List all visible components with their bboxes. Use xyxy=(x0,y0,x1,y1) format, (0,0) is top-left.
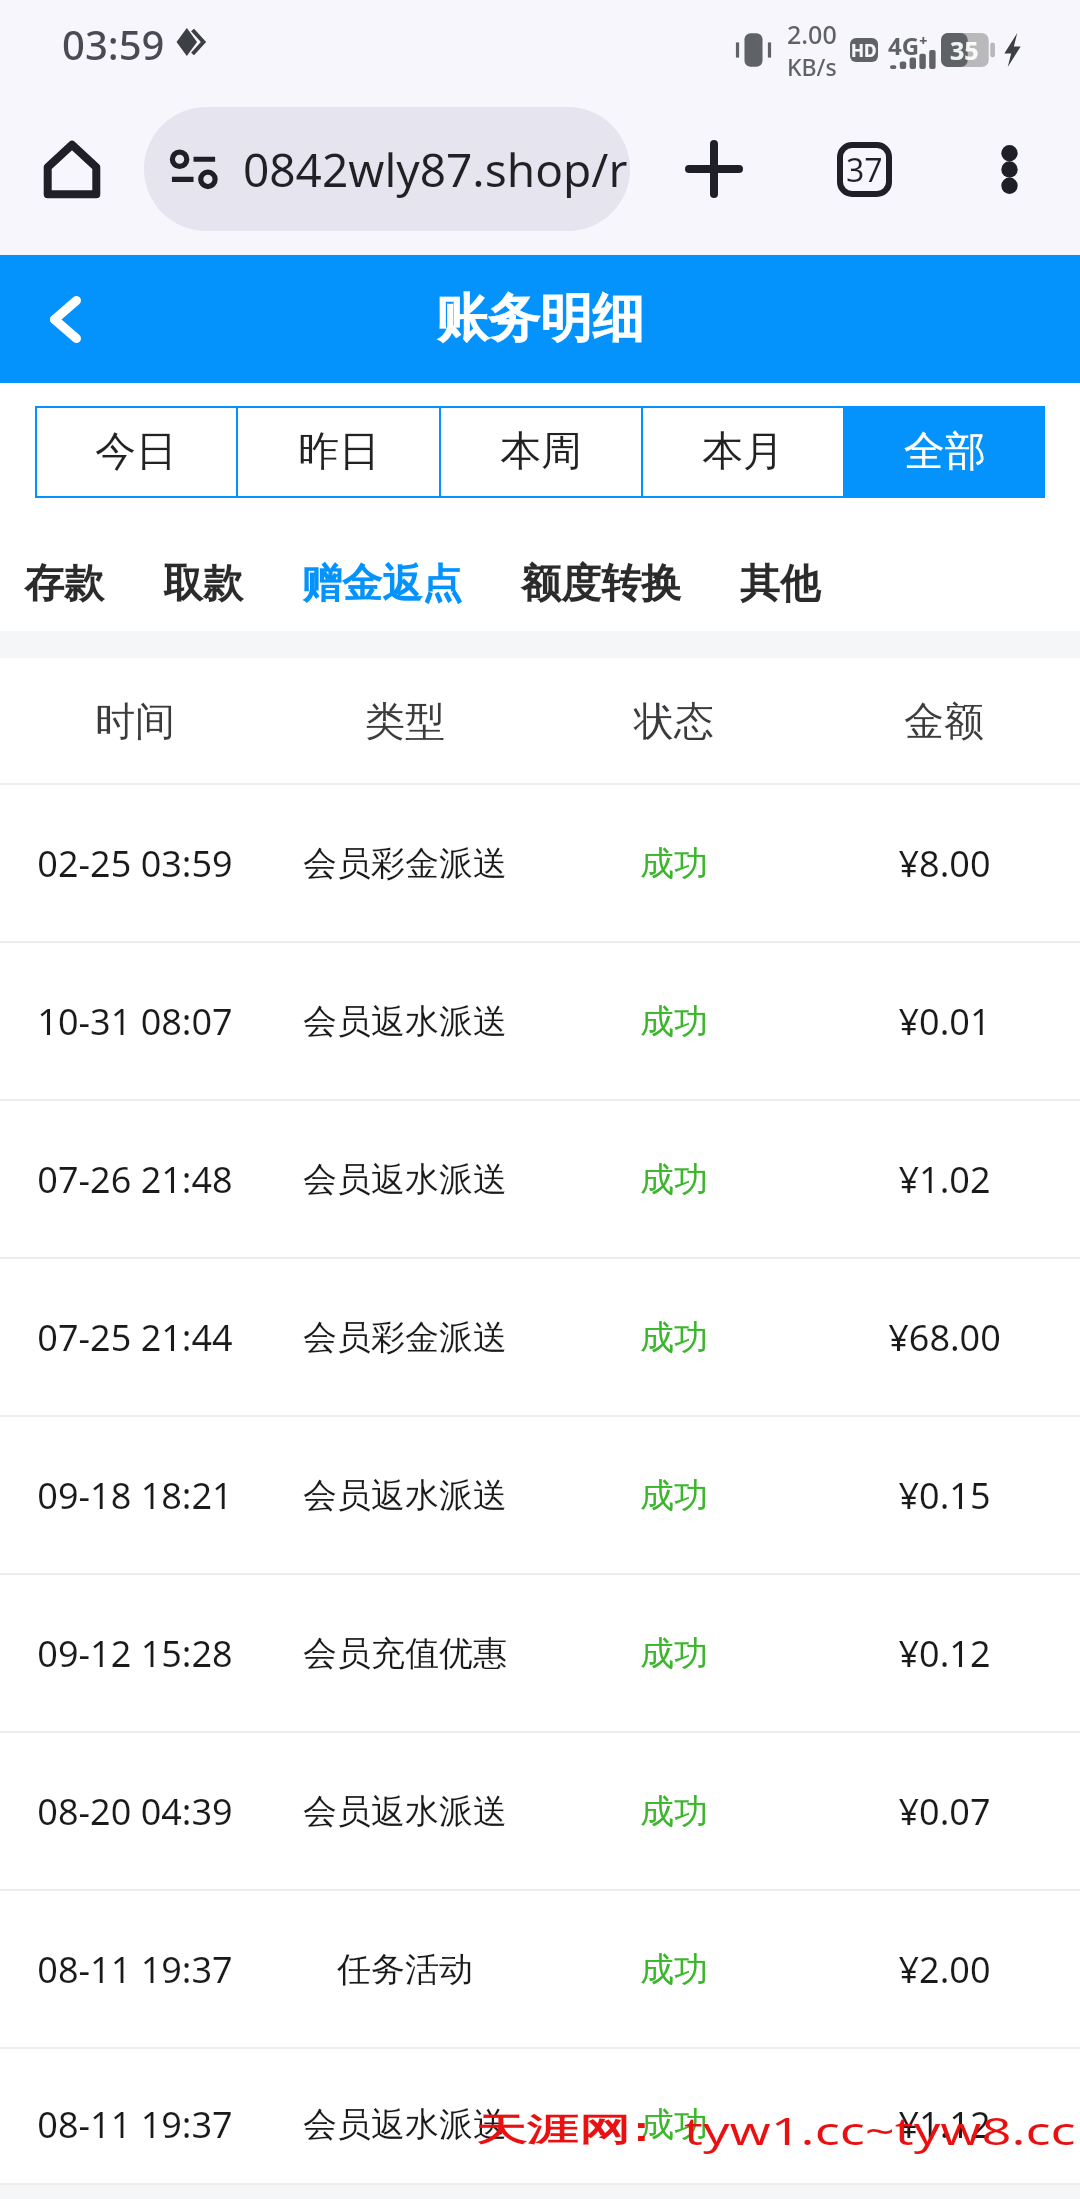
button[interactable]: 08-20 04:39 xyxy=(0,1733,1080,1889)
staticText: 其他 xyxy=(740,558,820,608)
button[interactable]: 今日 xyxy=(35,406,236,498)
button[interactable]: 本周 xyxy=(441,406,641,498)
staticText: 10-31 08:07 xyxy=(37,997,233,1046)
staticText: 本周 xyxy=(500,426,582,478)
staticText: 0842wly87.shop/r xyxy=(243,138,628,201)
staticText: 昨日 xyxy=(298,426,380,478)
button[interactable]: 0842wly87.shop/r xyxy=(144,107,630,231)
staticText: 成功 xyxy=(640,1948,708,1991)
staticText: 账务明细 xyxy=(436,286,644,352)
staticText: 类型 xyxy=(365,696,445,746)
staticText: 08-11 19:37 xyxy=(37,1945,233,1994)
staticText: 成功 xyxy=(640,1632,708,1675)
staticText: 2.00 xyxy=(787,17,837,51)
staticText: 任务活动 xyxy=(337,1948,473,1991)
staticText: 天涯网 xyxy=(475,2110,630,2151)
staticText: 会员返水派送 xyxy=(303,2103,507,2146)
button[interactable]: 额度转换 xyxy=(521,558,681,608)
button[interactable]: 09-18 18:21 xyxy=(0,1417,1080,1573)
staticText: 成功 xyxy=(640,1790,708,1833)
staticText: tyw1.cc~tyw8.cc xyxy=(684,2104,1076,2156)
staticText: 成功 xyxy=(640,1316,708,1359)
button[interactable]: 08-11 19:37 xyxy=(0,2049,1080,2199)
button[interactable]: 其他 xyxy=(740,558,820,608)
staticText: 4G⁺ xyxy=(888,29,928,62)
button[interactable]: 07-25 21:44 xyxy=(0,1259,1080,1415)
staticText: 金额 xyxy=(904,696,984,746)
button[interactable]: Tabs xyxy=(806,107,922,231)
staticText: 会员彩金派送 xyxy=(303,1316,507,1359)
staticText: 存款 xyxy=(24,558,104,608)
staticText: 会员返水派送 xyxy=(303,1790,507,1833)
staticText: ： xyxy=(616,2110,665,2151)
staticText: ¥0.12 xyxy=(898,1629,991,1678)
staticText: ¥68.00 xyxy=(888,1313,1001,1362)
staticText: HD xyxy=(851,39,877,62)
staticText: KB/s xyxy=(787,51,837,82)
staticText: 会员返水派送 xyxy=(303,1474,507,1517)
staticText: 09-12 15:28 xyxy=(37,1629,233,1678)
button[interactable]: 10-31 08:07 xyxy=(0,943,1080,1099)
staticText: 时间 xyxy=(95,696,175,746)
staticText: 会员返水派送 xyxy=(303,1000,507,1043)
staticText: 今日 xyxy=(95,426,177,478)
button[interactable]: 存款 xyxy=(24,558,104,608)
staticText: 03:59 xyxy=(62,17,165,71)
staticText: 成功 xyxy=(640,1158,708,1201)
staticText: 全部 xyxy=(904,426,986,478)
staticText: 赠金返点 xyxy=(302,558,462,608)
staticText: 成功 xyxy=(640,842,708,885)
staticText: 09-18 18:21 xyxy=(37,1471,233,1520)
staticText: ¥2.00 xyxy=(898,1945,991,1994)
staticText: ¥0.07 xyxy=(898,1787,991,1836)
staticText: 08-20 04:39 xyxy=(37,1787,233,1836)
staticText: 会员充值优惠 xyxy=(303,1632,507,1675)
staticText: ¥8.00 xyxy=(898,839,991,888)
button[interactable]: 昨日 xyxy=(238,406,439,498)
button[interactable]: 本月 xyxy=(643,406,843,498)
button[interactable]: More options xyxy=(954,107,1064,231)
staticText: 07-25 21:44 xyxy=(37,1313,233,1362)
staticText: 本月 xyxy=(702,426,784,478)
button[interactable]: 07-26 21:48 xyxy=(0,1101,1080,1257)
button[interactable]: New tab xyxy=(656,107,772,231)
staticText: 02-25 03:59 xyxy=(37,839,233,888)
staticText: 07-26 21:48 xyxy=(37,1155,233,1204)
staticText: 08-11 19:37 xyxy=(37,2100,233,2149)
staticText: 额度转换 xyxy=(521,558,681,608)
button[interactable]: 全部 xyxy=(845,406,1045,498)
button[interactable]: 08-11 19:37 xyxy=(0,1891,1080,2047)
button[interactable]: Home xyxy=(37,107,107,231)
staticText: 取款 xyxy=(163,558,243,608)
staticText: ¥1.12 xyxy=(898,2100,991,2149)
staticText: 会员彩金派送 xyxy=(303,842,507,885)
button[interactable]: Back xyxy=(20,255,110,383)
button[interactable]: 02-25 03:59 xyxy=(0,785,1080,941)
button[interactable]: 09-12 15:28 xyxy=(0,1575,1080,1731)
staticText: 成功 xyxy=(640,1474,708,1517)
staticText: 37 xyxy=(846,148,883,192)
staticText: ¥0.01 xyxy=(898,997,991,1046)
staticText: 成功 xyxy=(640,2103,708,2146)
staticText: 状态 xyxy=(634,696,714,746)
staticText: 成功 xyxy=(640,1000,708,1043)
button[interactable]: 取款 xyxy=(163,558,243,608)
staticText: ¥1.02 xyxy=(898,1155,991,1204)
button[interactable]: 赠金返点 xyxy=(302,558,462,608)
staticText: 会员返水派送 xyxy=(303,1158,507,1201)
staticText: ¥0.15 xyxy=(898,1471,991,1520)
staticText: 35 xyxy=(950,33,979,67)
